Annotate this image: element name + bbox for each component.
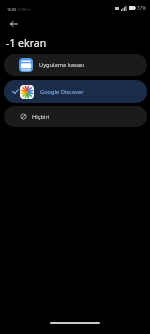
staticText: -1 ekran bbox=[6, 36, 47, 50]
button[interactable]: Uygulama kasası bbox=[4, 54, 147, 76]
button[interactable]: Hiçbiri bbox=[4, 106, 147, 127]
staticText: Hiçbiri bbox=[32, 113, 50, 121]
staticText: 15:00 bbox=[7, 7, 17, 12]
staticText: Google Discover bbox=[40, 88, 84, 96]
staticText: 0.9Kb/s bbox=[18, 7, 31, 12]
staticText: Uygulama kasası bbox=[39, 61, 85, 69]
button[interactable]: Google Discover bbox=[4, 80, 147, 103]
button[interactable]: Back bbox=[4, 14, 24, 34]
staticText: 37% bbox=[137, 5, 146, 11]
